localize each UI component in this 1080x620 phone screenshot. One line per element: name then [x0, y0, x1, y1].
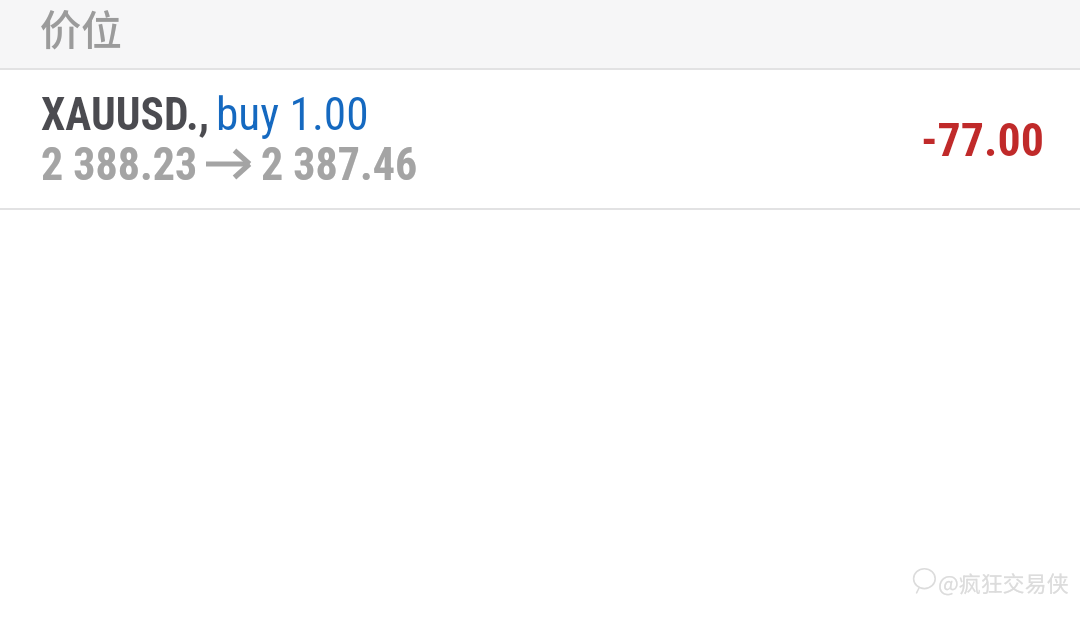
other: price change: [206, 152, 251, 176]
staticText: @疯狂交易侠: [938, 566, 1069, 598]
staticText: XAUUSD.,: [41, 87, 210, 141]
staticText: 2 388.23: [41, 137, 198, 191]
staticText: buy 1.00: [216, 87, 369, 141]
staticText: 2 387.46: [261, 137, 418, 191]
staticText: -77.00: [921, 113, 1044, 167]
button[interactable]: [0, 70, 1080, 208]
staticText: 价位: [40, 0, 123, 58]
button[interactable]: [0, 0, 1080, 68]
other: Weibo: [910, 564, 940, 594]
